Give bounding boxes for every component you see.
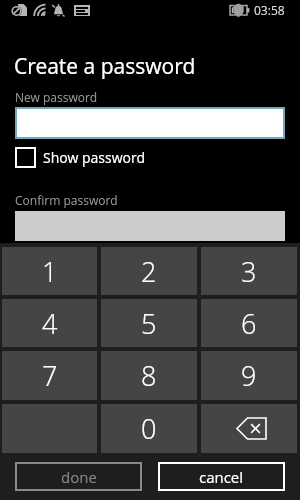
staticText: Confirm password — [15, 192, 118, 208]
staticText: New password — [15, 89, 98, 105]
button[interactable]: 4 — [2, 299, 97, 347]
button[interactable]: 7 — [2, 351, 97, 400]
button[interactable]: cancel — [158, 462, 285, 491]
staticText: 0 — [141, 410, 157, 447]
staticText: 2 — [141, 253, 157, 290]
staticText: Create a password — [14, 52, 196, 81]
staticText: 5 — [141, 305, 157, 342]
button[interactable]: 3 — [201, 247, 297, 295]
staticText: 9 — [241, 357, 257, 394]
staticText: 6 — [241, 305, 257, 342]
button[interactable]: Show password — [15, 147, 146, 168]
button[interactable]: 2 — [101, 247, 197, 295]
button[interactable]: 8 — [101, 351, 197, 400]
staticText: 03:58 — [254, 2, 285, 18]
button[interactable]: 1 — [2, 247, 97, 295]
button[interactable]: 5 — [101, 299, 197, 347]
button[interactable]: 6 — [201, 299, 297, 347]
staticText: Show password — [43, 148, 146, 167]
staticText: 7 — [42, 357, 58, 394]
staticText: 1 — [42, 253, 58, 290]
staticText: 4 — [42, 305, 58, 342]
staticText: done — [61, 467, 97, 487]
staticText: 8 — [141, 357, 157, 394]
button[interactable]: 0 — [101, 404, 197, 453]
staticText: 3 — [241, 253, 257, 290]
staticText: cancel — [199, 467, 244, 487]
button[interactable]: 9 — [201, 351, 297, 400]
button[interactable]: done — [15, 462, 142, 491]
button[interactable]: Backspace — [201, 404, 297, 453]
